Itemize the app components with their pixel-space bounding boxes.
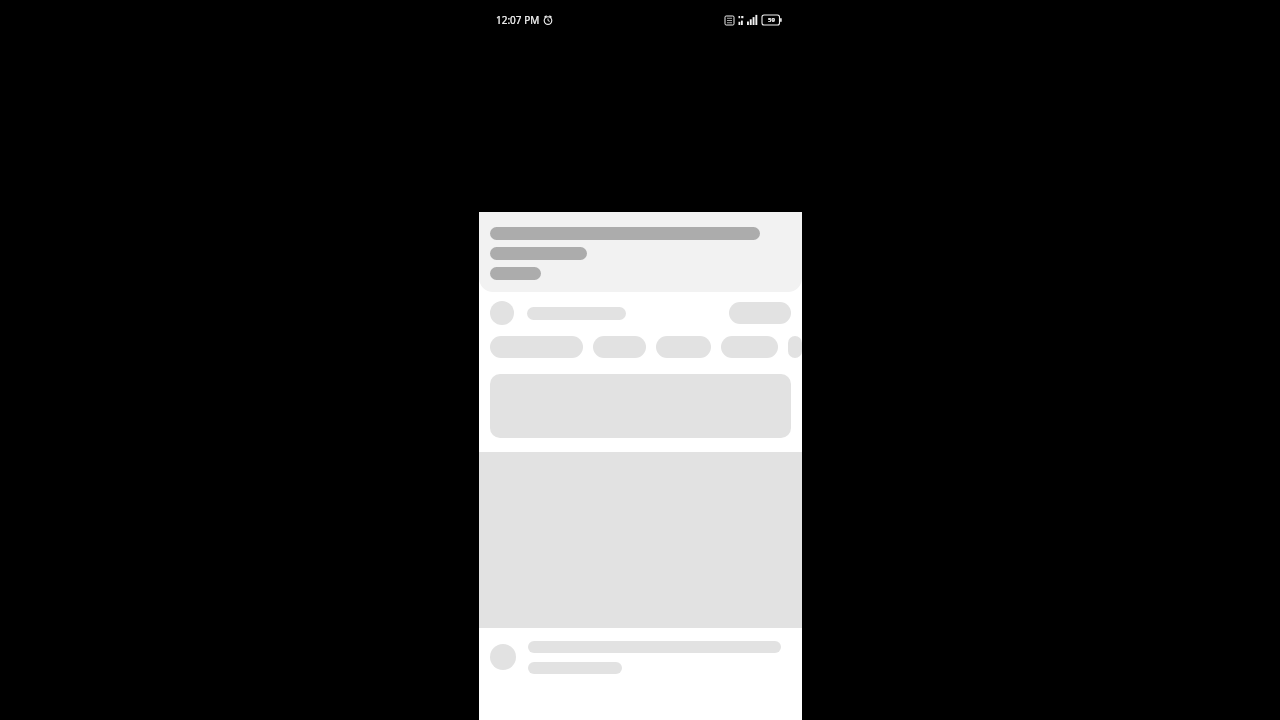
button[interactable]: [729, 302, 791, 324]
button[interactable]: [479, 212, 802, 292]
button[interactable]: [788, 336, 802, 358]
button[interactable]: [656, 336, 711, 358]
staticText: 12:07 PM: [496, 13, 540, 27]
staticText: 59: [768, 16, 775, 24]
button[interactable]: [479, 636, 802, 678]
button[interactable]: [593, 336, 646, 358]
button[interactable]: [490, 336, 583, 358]
button[interactable]: [721, 336, 778, 358]
button[interactable]: [479, 292, 802, 334]
